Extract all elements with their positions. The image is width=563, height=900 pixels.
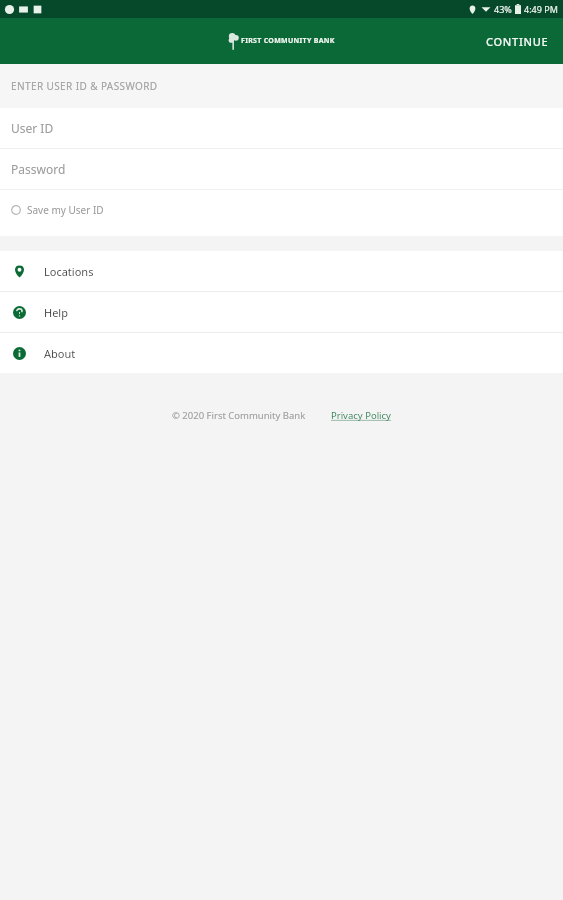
staticText: Locations: [44, 264, 94, 279]
button[interactable]: User ID: [0, 108, 563, 149]
button[interactable]: Save my User ID: [0, 190, 563, 230]
staticText: FIRST COMMUNITY BANK: [241, 36, 335, 46]
button[interactable]: Password: [0, 149, 563, 190]
staticText: About: [44, 346, 76, 361]
button[interactable]: About: [0, 333, 563, 373]
staticText: © 2020 First Community Bank: [172, 409, 306, 422]
staticText: Save my User ID: [27, 203, 104, 217]
button[interactable]: CONTINUE: [472, 22, 563, 61]
staticText: 43%: [494, 3, 512, 15]
button[interactable]: Privacy Policy: [331, 409, 391, 422]
staticText: Password: [11, 161, 66, 177]
staticText: CONTINUE: [486, 34, 549, 49]
button[interactable]: Help: [0, 292, 563, 332]
staticText: Help: [44, 305, 68, 320]
button[interactable]: Locations: [0, 251, 563, 291]
staticText: Privacy Policy: [331, 409, 391, 422]
staticText: ENTER USER ID & PASSWORD: [11, 79, 158, 93]
staticText: 4:49 PM: [524, 3, 558, 15]
staticText: User ID: [11, 120, 54, 136]
